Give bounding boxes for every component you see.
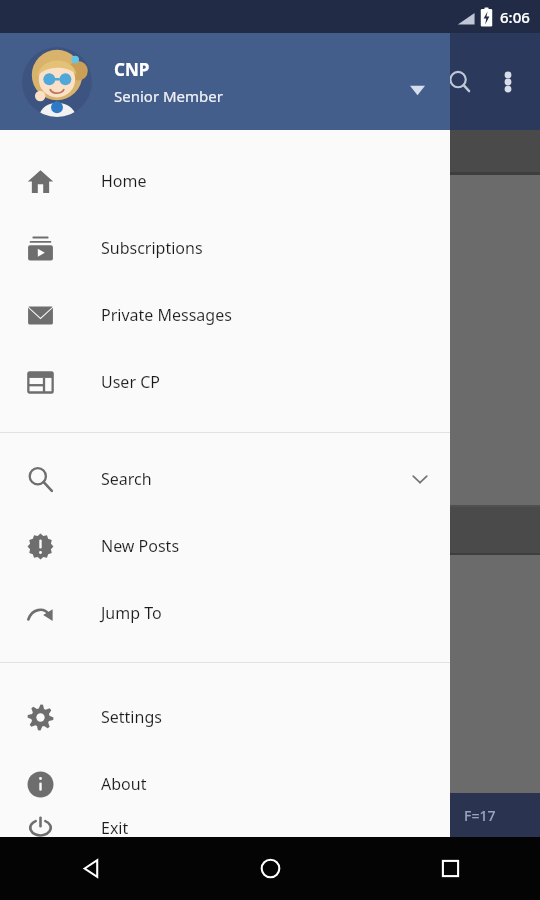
staticText: Settings	[101, 706, 162, 728]
button[interactable]: Settings	[0, 683, 450, 750]
staticText: Search	[101, 468, 152, 490]
staticText: Exit	[101, 817, 129, 837]
staticText: New Posts	[101, 535, 180, 557]
button[interactable]: CNP	[0, 33, 450, 130]
button[interactable]: About	[0, 750, 450, 817]
staticText: About	[101, 773, 147, 795]
staticText: 6:06	[500, 7, 530, 27]
button[interactable]: More options	[484, 58, 532, 106]
button[interactable]: Recent apps	[360, 837, 540, 900]
button[interactable]: Exit	[0, 817, 450, 837]
button[interactable]: Home	[0, 147, 450, 214]
button[interactable]: Back	[0, 837, 180, 900]
staticText: Private Messages	[101, 304, 232, 326]
button[interactable]: New Posts	[0, 512, 450, 579]
staticText: Subscriptions	[101, 237, 203, 259]
button[interactable]: Expand account list	[400, 73, 434, 107]
button[interactable]: Search	[436, 58, 484, 106]
button[interactable]: User CP	[0, 348, 450, 415]
staticText: User CP	[101, 371, 160, 393]
staticText: Jump To	[101, 602, 162, 624]
staticText: Home	[101, 170, 147, 192]
staticText: F=17	[464, 806, 496, 825]
staticText: CNP	[114, 58, 150, 81]
button[interactable]: Private Messages	[0, 281, 450, 348]
button[interactable]: Jump To	[0, 579, 450, 646]
staticText: Senior Member	[114, 86, 223, 106]
button[interactable]: Home	[180, 837, 360, 900]
button[interactable]: Search	[0, 445, 450, 512]
button[interactable]: Subscriptions	[0, 214, 450, 281]
